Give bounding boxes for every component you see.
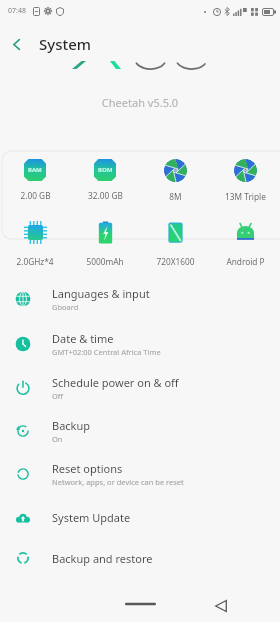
staticText: R [244,167,248,174]
button[interactable]: Reset options [0,453,280,495]
button[interactable]: RAM [0,159,70,201]
button[interactable]: Languages & input [0,278,280,320]
staticText: Android P [226,256,265,267]
button[interactable]: Back [209,594,233,618]
button[interactable]: Android P [210,221,280,267]
button[interactable]: 2.0GHz*4 [0,221,70,267]
button[interactable]: Backup and restore [0,537,280,579]
staticText: Network, apps, or device can be reset [52,477,184,487]
staticText: Reset options [52,461,123,476]
staticText: Gboard [52,302,79,312]
staticText: 720X1600 [156,256,195,267]
button[interactable]: Home [116,591,164,617]
staticText: Languages & input [52,286,150,301]
staticText: R [174,167,178,174]
button[interactable]: R [210,159,280,202]
button[interactable]: ROM [70,159,140,201]
staticText: Date & time [52,331,114,346]
staticText: Off [52,391,64,401]
staticText: Schedule power on & off [52,375,179,390]
button[interactable]: 5000mAh [70,221,140,267]
staticText: 2.00 GB [20,190,51,201]
staticText: System [39,34,92,54]
staticText: 5000mAh [86,256,124,267]
staticText: ROM [98,166,113,174]
button[interactable]: Backup [0,410,280,452]
staticText: Cheetah v5.5.0 [0,95,280,110]
button[interactable]: 720X1600 [140,221,210,267]
staticText: 07:48 [8,6,26,16]
staticText: RAM [28,166,42,174]
staticText: On [52,434,63,444]
button[interactable]: Navigate up [0,28,32,60]
staticText: 32.00 GB [88,190,123,201]
button[interactable]: Date & time [0,323,280,365]
staticText: GMT+02:00 Central Africa Time [52,347,161,357]
staticText: System Update [52,510,131,525]
staticText: 2.0GHz*4 [16,256,54,267]
staticText: 13M Triple [225,191,266,202]
staticText: Backup [52,418,91,433]
button[interactable]: System Update [0,496,280,538]
button[interactable]: R [140,159,210,202]
staticText: 8M [169,191,182,202]
staticText: Backup and restore [52,551,153,566]
button[interactable]: Schedule power on & off [0,367,280,409]
